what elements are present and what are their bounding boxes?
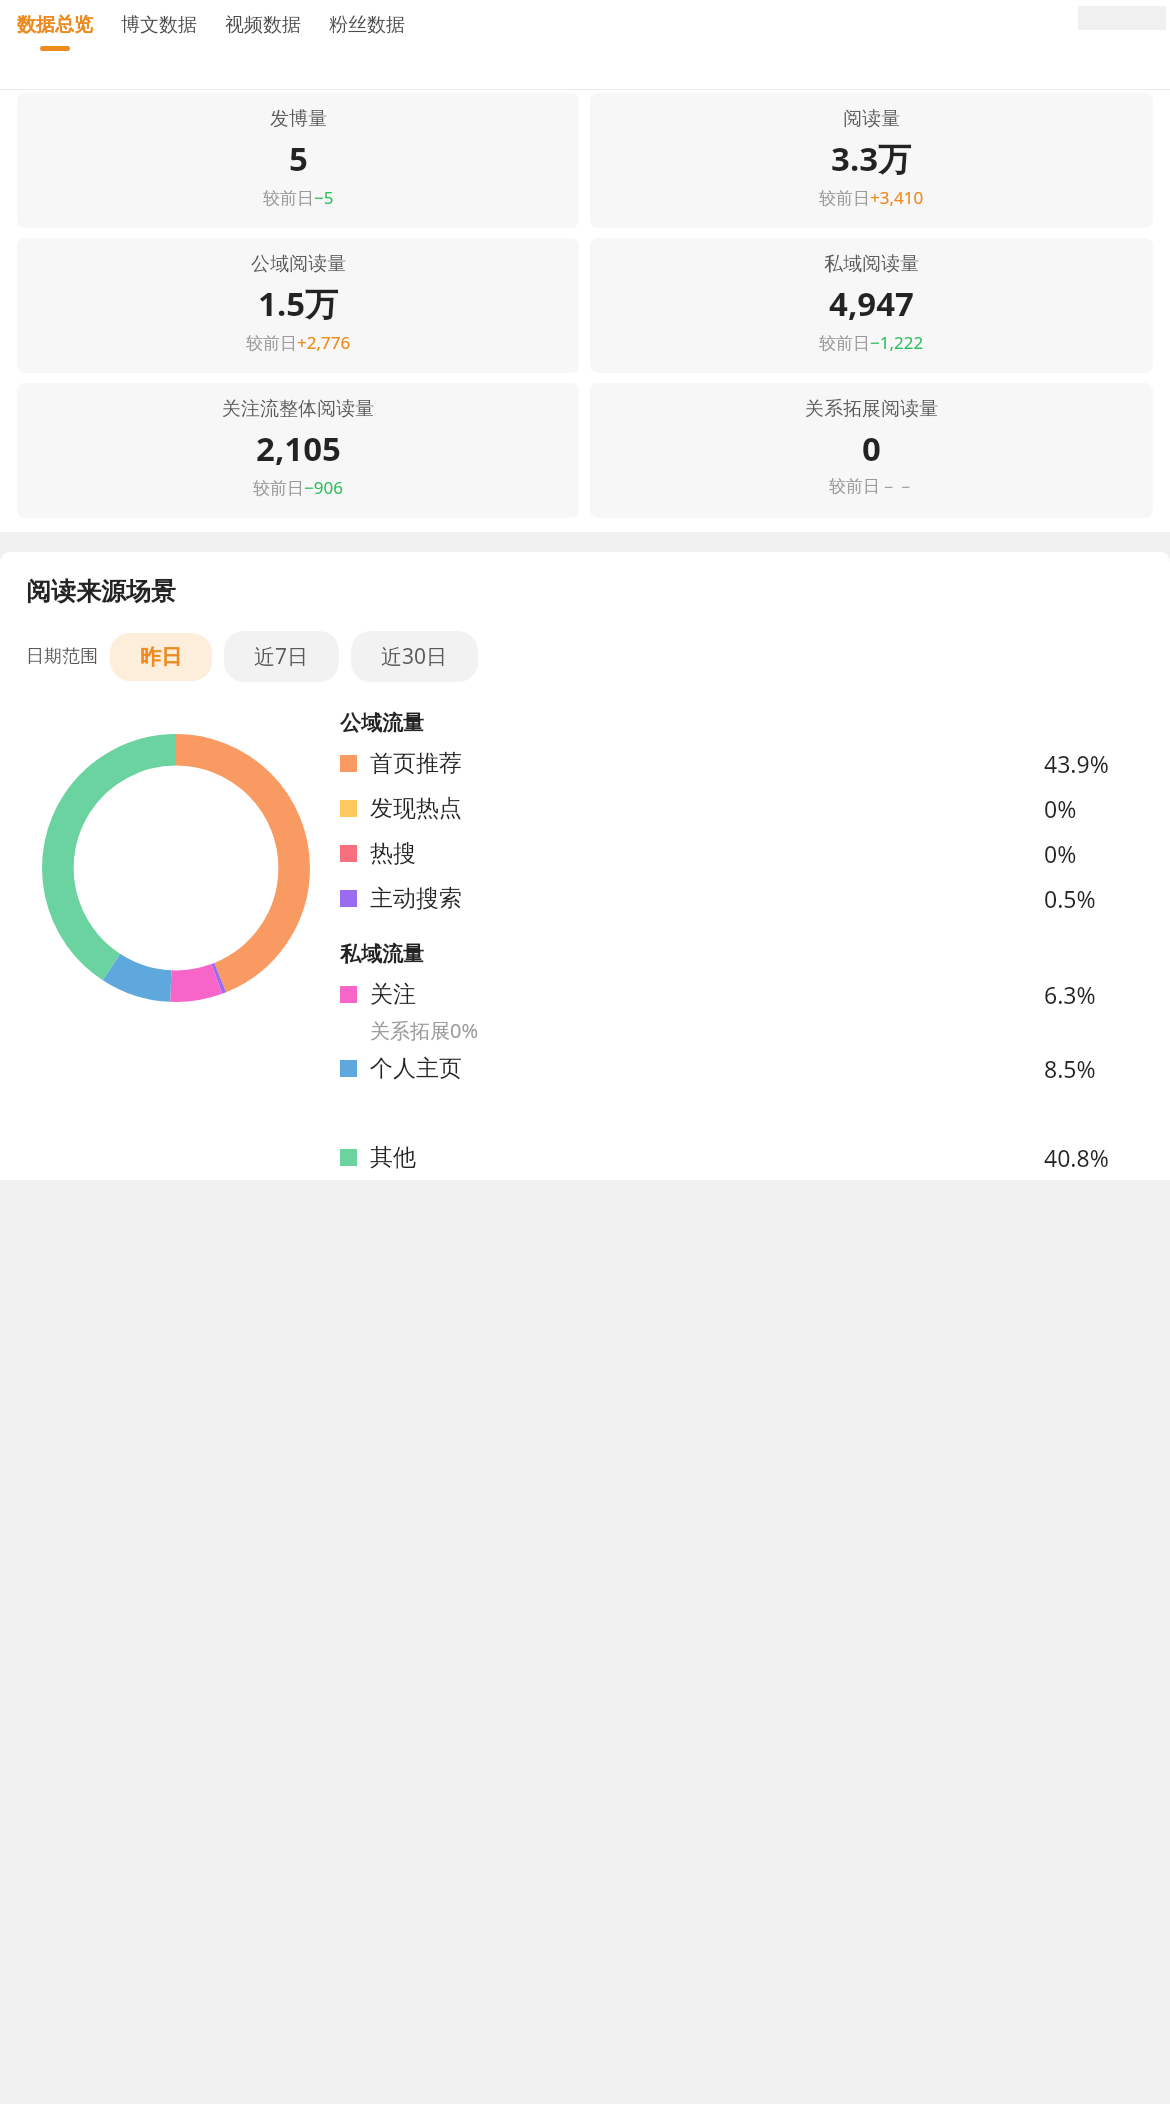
staticText: 关注流整体阅读量 [222,397,374,421]
staticText: 较前日−5 [263,186,334,209]
button[interactable]: 发博量 [17,93,579,228]
staticText: 视频数据 [225,13,301,37]
staticText: 首页推荐 [370,749,462,778]
staticText: 近7日 [254,642,309,671]
staticText: 阅读来源场景 [26,576,176,607]
staticText: 日期范围 [26,645,98,668]
staticText: 4,947 [829,281,914,326]
staticText: 主动搜索 [370,884,462,913]
staticText: 较前日−906 [253,476,343,499]
staticText: 3.3万 [831,136,912,181]
button[interactable]: 博文数据 [116,0,202,46]
staticText: 阅读量 [843,107,900,131]
staticText: 关注 [370,980,416,1009]
button[interactable]: 关系拓展阅读量 [590,383,1153,518]
button[interactable]: 私域阅读量 [590,238,1153,373]
staticText: 43.9% [1044,748,1109,779]
button[interactable]: 视频数据 [220,0,306,46]
staticText: 0 [862,426,881,471]
staticText: 公域流量 [340,710,424,736]
staticText: 8.5% [1044,1053,1096,1084]
staticText: 关系拓展阅读量 [805,397,938,421]
staticText: 0% [1044,793,1077,824]
staticText: 0% [1044,838,1077,869]
staticText: 个人主页 [370,1054,462,1083]
staticText: 近30日 [381,642,448,671]
staticText: 较前日－－ [829,476,914,497]
button[interactable]: 公域阅读量 [17,238,579,373]
button[interactable]: 近7日 [224,631,339,682]
staticText: 发博量 [270,107,327,131]
staticText: 关系拓展0% [370,1017,479,1044]
button[interactable]: 阅读量 [590,93,1153,228]
button[interactable]: 数据总览 [12,0,98,51]
staticText: 昨日 [140,644,182,670]
button[interactable]: 关注流整体阅读量 [17,383,579,518]
staticText: 6.3% [1044,979,1096,1010]
staticText: 热搜 [370,839,416,868]
staticText: 粉丝数据 [329,13,405,37]
button[interactable]: 近30日 [351,631,478,682]
button[interactable]: 粉丝数据 [324,0,410,46]
staticText: 较前日+3,410 [819,186,924,209]
staticText: 较前日−1,222 [819,331,924,354]
staticText: 数据总览 [17,13,93,37]
staticText: 发现热点 [370,794,462,823]
staticText: 私域阅读量 [824,252,919,276]
staticText: 40.8% [1044,1142,1109,1173]
staticText: 1.5万 [258,281,339,326]
staticText: 较前日+2,776 [246,331,351,354]
staticText: 2,105 [256,426,341,471]
staticText: 私域流量 [340,941,424,967]
button[interactable]: 昨日 [110,633,212,681]
staticText: 0.5% [1044,883,1096,914]
staticText: 公域阅读量 [251,252,346,276]
staticText: 其他 [370,1143,416,1172]
staticText: 5 [289,136,308,181]
staticText: 博文数据 [121,13,197,37]
